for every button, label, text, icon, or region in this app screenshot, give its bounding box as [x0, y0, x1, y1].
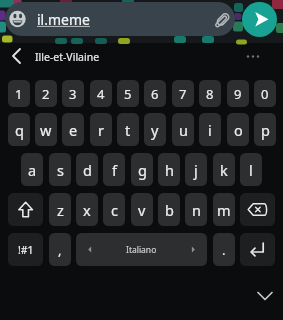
staticText: x	[83, 200, 91, 220]
button[interactable]	[248, 282, 282, 310]
staticText: j	[194, 160, 198, 180]
staticText: 7	[179, 85, 187, 103]
staticText: a	[28, 160, 37, 180]
staticText: 1	[15, 85, 23, 103]
staticText: e	[69, 120, 78, 140]
button[interactable]: s	[49, 153, 71, 186]
button[interactable]: j	[185, 153, 207, 186]
staticText: s	[57, 160, 64, 180]
staticText: 6	[151, 85, 159, 103]
button[interactable]: a	[21, 153, 43, 186]
button[interactable]: !#1	[8, 233, 43, 266]
button[interactable]: v	[131, 193, 153, 226]
button[interactable]: r	[90, 113, 112, 146]
button[interactable]: Ille-et-Vilaine	[35, 43, 185, 70]
staticText: f	[112, 160, 117, 180]
staticText: t	[125, 120, 131, 140]
button[interactable]: e	[62, 113, 84, 146]
button[interactable]: u	[172, 113, 194, 146]
staticText: 9	[234, 85, 242, 103]
button[interactable]	[242, 2, 277, 37]
staticText: v	[138, 200, 146, 220]
staticText: w	[40, 120, 52, 140]
staticText: o	[234, 120, 243, 140]
button[interactable]: d	[76, 153, 98, 186]
button[interactable]: .	[213, 233, 235, 266]
button[interactable]: 5	[117, 80, 139, 107]
button[interactable]: 9	[227, 80, 249, 107]
button[interactable]	[240, 233, 275, 266]
staticText: g	[138, 160, 147, 180]
staticText: k	[220, 160, 228, 180]
button[interactable]: y	[144, 113, 166, 146]
staticText: h	[165, 160, 174, 180]
staticText: z	[57, 200, 64, 220]
staticText: q	[15, 120, 24, 140]
button[interactable]: 8	[199, 80, 221, 107]
button[interactable]: h	[158, 153, 180, 186]
button[interactable]	[8, 193, 43, 226]
button[interactable]	[240, 193, 275, 226]
staticText: l	[249, 160, 253, 180]
button[interactable]: w	[35, 113, 57, 146]
button[interactable]: x	[76, 193, 98, 226]
button[interactable]: ,	[49, 233, 71, 266]
button[interactable]: i	[199, 113, 221, 146]
button[interactable]: Italiano	[76, 233, 207, 266]
staticText: .	[222, 241, 226, 259]
staticText: d	[83, 160, 92, 180]
staticText: Ille-et-Vilaine	[35, 50, 100, 64]
staticText: 2	[42, 85, 50, 103]
button[interactable]: o	[227, 113, 249, 146]
staticText: 5	[124, 85, 132, 103]
button[interactable]: q	[8, 113, 30, 146]
button[interactable]: f	[103, 153, 125, 186]
button[interactable]: b	[158, 193, 180, 226]
button[interactable]: k	[213, 153, 235, 186]
button[interactable]: g	[131, 153, 153, 186]
button[interactable]: c	[103, 193, 125, 226]
staticText: 3	[69, 85, 77, 103]
button[interactable]: l	[240, 153, 262, 186]
staticText: 0	[261, 85, 269, 103]
staticText: m	[217, 200, 231, 220]
button[interactable]: 6	[144, 80, 166, 107]
button[interactable]: n	[185, 193, 207, 226]
button[interactable]: p	[254, 113, 276, 146]
button[interactable]: 1	[8, 80, 30, 107]
staticText: 4	[97, 85, 105, 103]
button[interactable]: z	[49, 193, 71, 226]
button[interactable]: 3	[62, 80, 84, 107]
button[interactable]: m	[213, 193, 235, 226]
button[interactable]: 4	[90, 80, 112, 107]
staticText: Italiano	[126, 244, 157, 256]
staticText: !#1	[18, 243, 34, 257]
button[interactable]: 7	[172, 80, 194, 107]
staticText: b	[165, 200, 174, 220]
button[interactable]	[5, 2, 235, 36]
staticText: u	[179, 120, 188, 140]
staticText: r	[98, 120, 104, 140]
staticText: il.meme	[37, 10, 90, 29]
staticText: c	[111, 200, 118, 220]
staticText: ,	[58, 241, 62, 259]
button[interactable]: 0	[254, 80, 276, 107]
button[interactable]: 2	[35, 80, 57, 107]
staticText: 8	[206, 85, 214, 103]
staticText: y	[151, 120, 159, 140]
button[interactable]	[0, 43, 34, 71]
staticText: n	[192, 200, 201, 220]
button[interactable]: t	[117, 113, 139, 146]
staticText: i	[208, 120, 212, 140]
staticText: p	[261, 120, 270, 140]
